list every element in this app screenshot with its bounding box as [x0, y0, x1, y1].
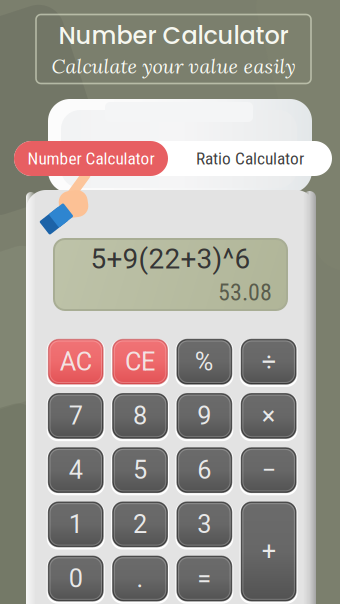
staticText: 6 — [197, 455, 211, 485]
staticText: Number Calculator — [58, 19, 288, 52]
button[interactable]: 3 — [175, 500, 234, 549]
button[interactable]: CE — [111, 337, 169, 386]
staticText: ÷ — [262, 347, 276, 377]
button[interactable]: 6 — [175, 446, 234, 494]
button[interactable]: . — [111, 554, 169, 603]
staticText: − — [262, 455, 276, 485]
button[interactable]: 7 — [46, 392, 105, 440]
button[interactable]: % — [175, 337, 234, 386]
staticText: 9 — [197, 401, 211, 431]
staticText: + — [262, 537, 276, 566]
staticText: 5 — [133, 455, 147, 485]
button[interactable]: − — [239, 446, 298, 494]
button[interactable]: 8 — [111, 392, 169, 440]
staticText: 1 — [69, 509, 83, 539]
button[interactable]: 9 — [175, 392, 234, 440]
button[interactable]: 4 — [46, 446, 105, 494]
button[interactable]: × — [239, 392, 298, 440]
button[interactable]: 1 — [46, 500, 105, 549]
staticText: % — [195, 347, 214, 377]
button[interactable]: AC — [46, 337, 105, 386]
staticText: 8 — [133, 401, 147, 431]
button[interactable]: Number Calculator — [14, 141, 168, 176]
staticText: Calculate your value easily — [51, 53, 295, 79]
staticText: AC — [60, 347, 92, 377]
staticText: 53.08 — [218, 278, 272, 306]
staticText: 0 — [69, 564, 83, 593]
staticText: Number Calculator — [27, 148, 154, 169]
staticText: . — [137, 564, 144, 593]
staticText: 7 — [69, 401, 83, 431]
button[interactable]: ÷ — [239, 337, 298, 386]
staticText: 5+9(22+3)^6 — [90, 242, 250, 275]
staticText: = — [197, 564, 211, 593]
button[interactable]: = — [175, 554, 234, 603]
button[interactable]: + — [239, 500, 298, 603]
staticText: × — [262, 401, 276, 431]
staticText: 2 — [133, 509, 147, 539]
button[interactable]: 0 — [46, 554, 105, 603]
staticText: 3 — [197, 509, 211, 539]
button[interactable]: 2 — [111, 500, 169, 549]
button[interactable]: 5 — [111, 446, 169, 494]
staticText: CE — [125, 347, 155, 377]
button[interactable]: Ratio Calculator — [168, 141, 332, 176]
staticText: 4 — [69, 455, 83, 485]
staticText: Ratio Calculator — [196, 148, 304, 169]
